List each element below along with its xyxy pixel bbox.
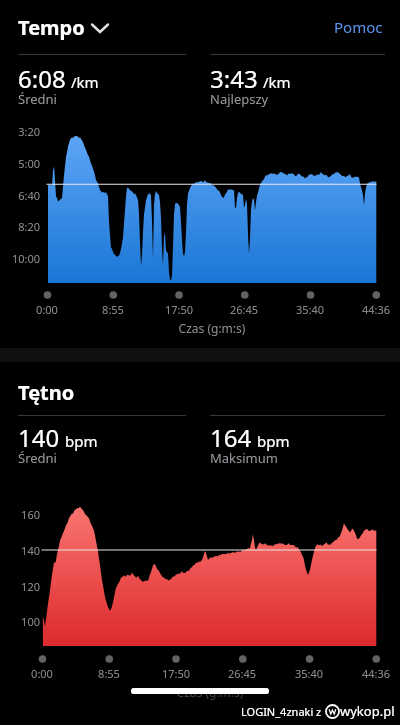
staticText: 6:40: [0, 188, 40, 203]
staticText: Tętno: [18, 379, 75, 406]
staticText: 140: [0, 543, 40, 558]
staticText: bpm: [257, 431, 290, 451]
staticText: 100: [0, 614, 40, 629]
staticText: 17:50: [156, 302, 202, 317]
staticText: 0:00: [19, 666, 65, 681]
staticText: /km: [71, 72, 99, 92]
staticText: 44:36: [353, 302, 399, 317]
staticText: 44:36: [353, 666, 399, 681]
staticText: 8:20: [0, 219, 40, 234]
staticText: Tempo: [18, 14, 85, 41]
staticText: /km: [263, 72, 291, 92]
staticText: 10:00: [0, 251, 40, 266]
staticText: Czas (g:m:s): [150, 684, 270, 700]
button[interactable]: Tempo: [18, 14, 108, 41]
staticText: 3:20: [0, 124, 40, 139]
staticText: Najlepszy: [210, 90, 269, 108]
staticText: 26:45: [219, 666, 265, 681]
staticText: 8:55: [86, 666, 132, 681]
staticText: Średni: [18, 449, 57, 467]
staticText: 164: [210, 421, 252, 454]
staticText: 35:40: [286, 666, 332, 681]
staticText: 0:00: [24, 302, 70, 317]
staticText: 3:43: [210, 62, 258, 95]
staticText: 8:55: [90, 302, 136, 317]
staticText: Maksimum: [210, 449, 278, 467]
staticText: Średni: [18, 90, 57, 108]
staticText: 5:00: [0, 156, 40, 171]
staticText: bpm: [65, 431, 98, 451]
staticText: 6:08: [18, 62, 66, 95]
staticText: Pomoc: [334, 17, 383, 37]
staticText: 17:50: [153, 666, 199, 681]
staticText: 120: [0, 579, 40, 594]
staticText: 26:45: [221, 302, 267, 317]
staticText: Czas (g:m:s): [152, 320, 272, 336]
staticText: wykop.pl: [340, 702, 395, 720]
button[interactable]: Pomoc: [334, 17, 383, 37]
staticText: 35:40: [287, 302, 333, 317]
staticText: 160: [0, 507, 40, 522]
staticText: LOGIN_4znaki z: [241, 704, 325, 719]
staticText: 140: [18, 421, 60, 454]
